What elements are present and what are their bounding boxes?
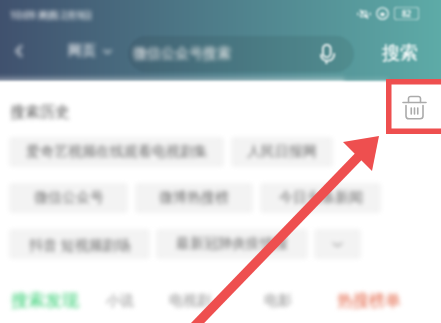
button[interactable]: 爱奇艺视频在线观看电视剧集	[9, 137, 224, 167]
staticText: 电视剧	[169, 292, 211, 310]
button[interactable]: 电影	[264, 292, 292, 310]
staticText: 抖音 短视频剧场	[29, 235, 131, 254]
other: Voice search	[316, 43, 338, 65]
button[interactable]: Voice search	[128, 36, 354, 72]
staticText: 网页	[68, 42, 96, 60]
staticText: 热搜榜单	[337, 291, 401, 311]
button[interactable]: Clear search history	[388, 82, 441, 133]
staticText: 10:09 周四 2月9日	[10, 8, 93, 22]
button[interactable]: 搜索	[370, 38, 430, 69]
button[interactable]: 搜索发现	[11, 290, 79, 311]
button[interactable]: 微信公众号	[9, 183, 128, 213]
staticText: 微信公众号搜索	[133, 45, 231, 63]
staticText: 小说	[106, 292, 134, 310]
button[interactable]: 最新冠肺炎疫情报	[156, 229, 308, 259]
button[interactable]: 电视剧	[169, 292, 211, 310]
staticText: 微博热搜榜	[159, 189, 229, 207]
button[interactable]: 热搜榜单	[337, 291, 401, 311]
button[interactable]: 微博热搜榜	[135, 183, 253, 213]
button[interactable]: 抖音 短视频剧场	[9, 229, 150, 259]
staticText: 82	[402, 8, 412, 19]
staticText: 人民日报网	[247, 143, 317, 161]
button[interactable]: 小说	[106, 292, 134, 310]
staticText: 最新冠肺炎疫情报	[176, 235, 288, 253]
button[interactable]: 人民日报网	[231, 137, 333, 167]
staticText: 微信公众号	[34, 189, 104, 207]
staticText: 今日头条新闻	[279, 189, 363, 207]
button[interactable]: 今日头条新闻	[260, 183, 381, 213]
staticText: 爱奇艺视频在线观看电视剧集	[26, 143, 208, 161]
button[interactable]: 网页	[68, 40, 112, 62]
staticText: 搜索	[382, 42, 418, 65]
staticText: 搜索发现	[11, 290, 79, 311]
button[interactable]: Show more	[314, 229, 361, 259]
staticText: 搜索历史	[10, 103, 70, 122]
button[interactable]: Back	[6, 38, 32, 64]
staticText: 电影	[264, 292, 292, 310]
